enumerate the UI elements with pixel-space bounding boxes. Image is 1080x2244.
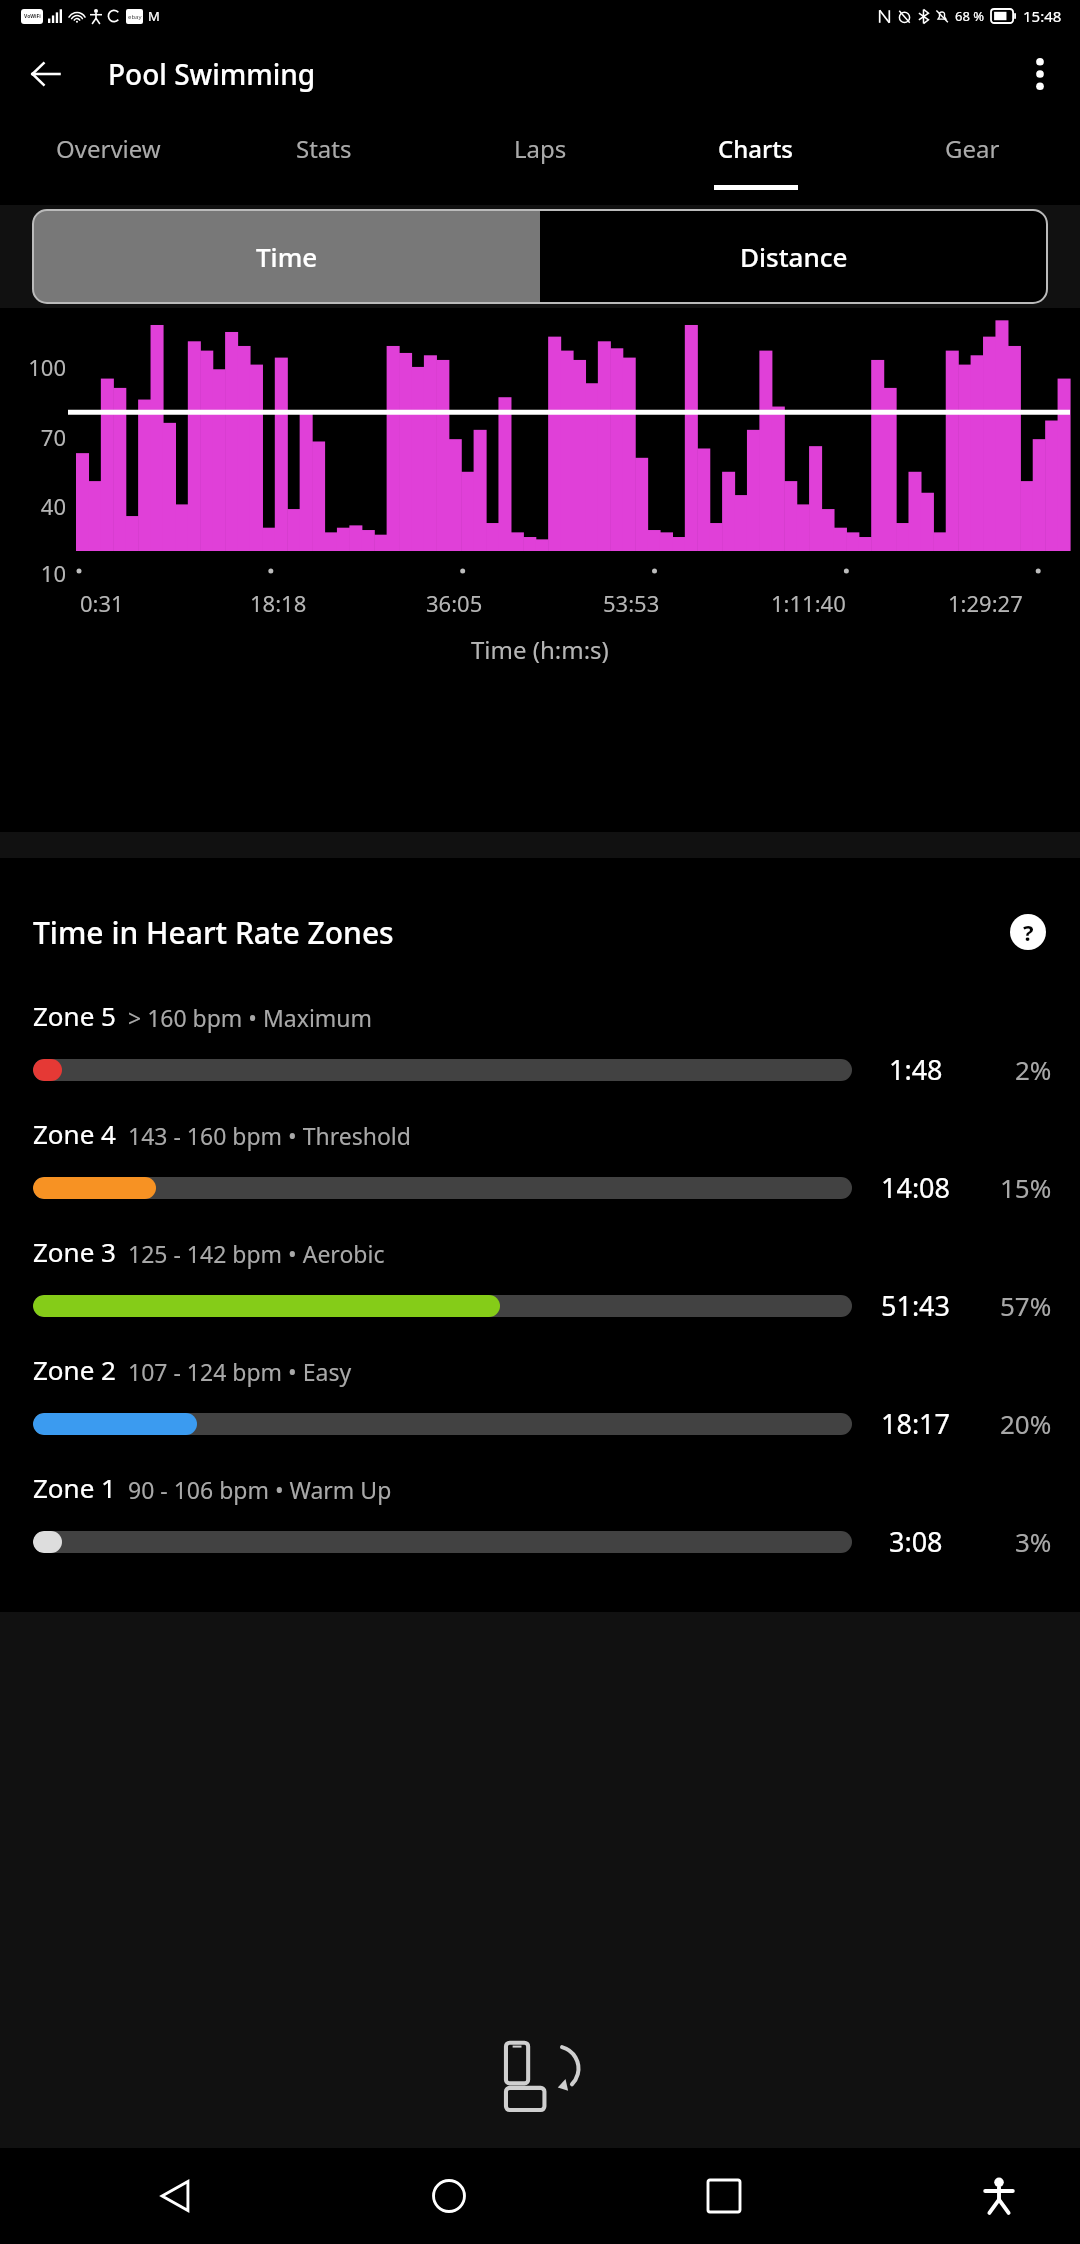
staticText: VoWiFi (24, 13, 41, 20)
button[interactable]: Zone 1 (0, 1470, 1080, 1588)
button[interactable]: Accessibility (954, 2151, 1044, 2241)
staticText: 143 - 160 bpm • Threshold (128, 1120, 411, 1151)
button[interactable]: Gear (864, 116, 1080, 205)
button[interactable]: Zone 4 (0, 1116, 1080, 1234)
staticText: 1:11:40 (771, 588, 846, 618)
button[interactable]: Back (130, 2151, 220, 2241)
button[interactable]: Help (1004, 908, 1052, 956)
staticText: 3% (1015, 1524, 1052, 1559)
staticText: Pool Swimming (108, 55, 316, 93)
button[interactable]: Charts (648, 116, 864, 205)
button[interactable]: Back (18, 46, 74, 102)
staticText: 14:08 (881, 1169, 951, 1206)
button[interactable]: Stats (216, 116, 432, 205)
staticText: 0:31 (80, 588, 124, 618)
staticText: Zone 3 (33, 1234, 116, 1269)
staticText: 107 - 124 bpm • Easy (128, 1356, 352, 1387)
staticText: 90 - 106 bpm • Warm Up (128, 1474, 392, 1505)
staticText: 100 (14, 352, 66, 382)
staticText: Distance (740, 239, 848, 274)
staticText: 2% (1015, 1052, 1052, 1087)
staticText: Time (256, 239, 318, 274)
button[interactable]: Home (404, 2151, 494, 2241)
staticText: Gear (945, 132, 1000, 165)
button[interactable]: Overview (0, 116, 216, 205)
staticText: 3:08 (889, 1523, 943, 1560)
staticText: M (148, 7, 160, 25)
staticText: Zone 4 (33, 1116, 116, 1151)
staticText: 36:05 (426, 588, 483, 618)
button[interactable]: Time (33, 210, 540, 303)
staticText: Time (h:m:s) (471, 633, 609, 666)
staticText: 40 (14, 491, 66, 521)
button[interactable]: Rotate device (492, 2028, 588, 2124)
staticText: 18:17 (881, 1405, 951, 1442)
staticText: 57% (1000, 1288, 1052, 1323)
button[interactable]: Distance (540, 210, 1047, 303)
staticText: > 160 bpm • Maximum (128, 1002, 373, 1033)
button[interactable]: Laps (432, 116, 648, 205)
staticText: 15% (1000, 1170, 1052, 1205)
staticText: ? (1023, 917, 1034, 947)
staticText: 10 (14, 558, 66, 588)
staticText: 20% (1000, 1406, 1052, 1441)
staticText: Overview (56, 132, 161, 165)
button[interactable]: Recent apps (679, 2151, 769, 2241)
staticText: 1:48 (889, 1051, 943, 1088)
staticText: 125 - 142 bpm • Aerobic (128, 1238, 385, 1269)
staticText: 68 % (955, 7, 985, 25)
staticText: Zone 1 (33, 1470, 116, 1505)
button[interactable]: More options (1012, 46, 1068, 102)
staticText: 15:48 (1023, 6, 1062, 26)
staticText: Zone 2 (33, 1352, 116, 1387)
staticText: Stats (296, 132, 352, 165)
staticText: 70 (14, 422, 66, 452)
staticText: Charts (718, 132, 794, 165)
staticText: 1:29:27 (948, 588, 1023, 618)
button[interactable]: Zone 2 (0, 1352, 1080, 1470)
staticText: Zone 5 (33, 998, 116, 1033)
staticText: 51:43 (881, 1287, 951, 1324)
staticText: 18:18 (250, 588, 307, 618)
staticText: Time in Heart Rate Zones (33, 912, 394, 953)
staticText: Laps (514, 132, 567, 165)
button[interactable]: Zone 5 (0, 998, 1080, 1116)
staticText: ebay (128, 13, 142, 21)
button[interactable]: Zone 3 (0, 1234, 1080, 1352)
staticText: 53:53 (603, 588, 660, 618)
